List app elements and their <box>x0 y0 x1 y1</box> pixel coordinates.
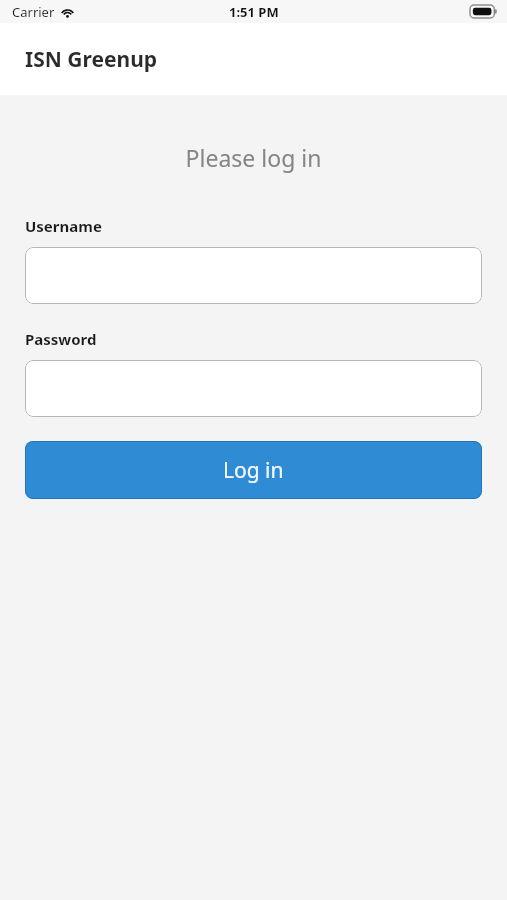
staticText: ISN Greenup <box>25 45 158 74</box>
button[interactable]: Log in <box>25 441 482 499</box>
button[interactable] <box>25 360 482 417</box>
staticText: 1:51 PM <box>229 3 279 21</box>
staticText: Password <box>25 329 97 349</box>
staticText: Please log in <box>0 142 507 173</box>
staticText: Username <box>25 216 102 236</box>
button[interactable] <box>25 247 482 304</box>
staticText: Log in <box>223 456 284 485</box>
staticText: Carrier <box>12 3 55 21</box>
